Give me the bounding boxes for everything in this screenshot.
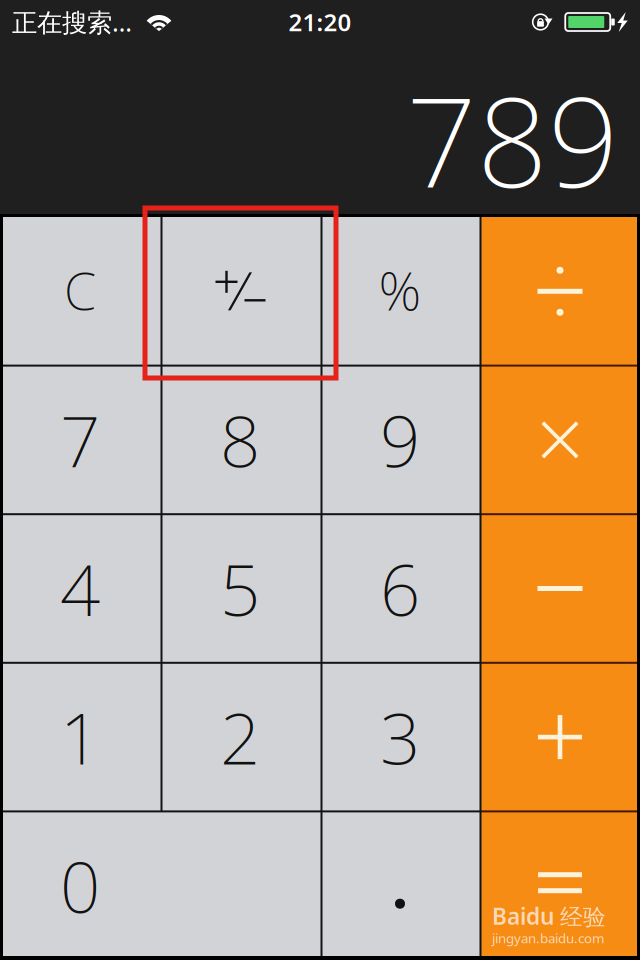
button[interactable]: 4 (0, 514, 160, 663)
staticText: 1 (60, 690, 100, 784)
staticText: jingyan.baidu.com (492, 929, 604, 947)
staticText: 9 (380, 393, 420, 487)
staticText: 5 (220, 542, 260, 635)
button[interactable]: 7 (0, 366, 160, 514)
staticText: 正在搜索… (12, 5, 132, 39)
staticText: 0 (60, 839, 100, 933)
button[interactable]: 3 (320, 663, 480, 811)
staticText: 789 (406, 57, 619, 222)
staticText: 7 (60, 393, 100, 487)
staticText: Baidu 经验 (492, 901, 606, 931)
button[interactable]: 5 (160, 514, 320, 663)
button[interactable]: % (320, 217, 480, 366)
button[interactable]: Equals (480, 811, 640, 960)
staticText: 3 (380, 690, 420, 784)
button[interactable]: 1 (0, 663, 160, 811)
button[interactable]: Subtract (480, 514, 640, 663)
staticText: % (378, 254, 421, 325)
staticText: 2 (220, 690, 260, 784)
staticText: C (64, 255, 96, 324)
button[interactable]: Decimal point (320, 811, 480, 960)
staticText: 21:20 (288, 6, 351, 38)
button[interactable]: 8 (160, 366, 320, 514)
staticText: 4 (60, 542, 100, 635)
button[interactable]: 9 (320, 366, 480, 514)
button[interactable]: Multiply (480, 366, 640, 514)
button[interactable]: Divide (480, 217, 640, 366)
button[interactable]: 6 (320, 514, 480, 663)
button[interactable]: Add (480, 663, 640, 811)
button[interactable]: C (0, 217, 160, 366)
button[interactable]: Plus minus, change sign (160, 217, 320, 366)
staticText: 6 (380, 542, 420, 635)
button[interactable]: 2 (160, 663, 320, 811)
button[interactable]: 0 (0, 811, 320, 960)
staticText: 8 (220, 393, 260, 487)
